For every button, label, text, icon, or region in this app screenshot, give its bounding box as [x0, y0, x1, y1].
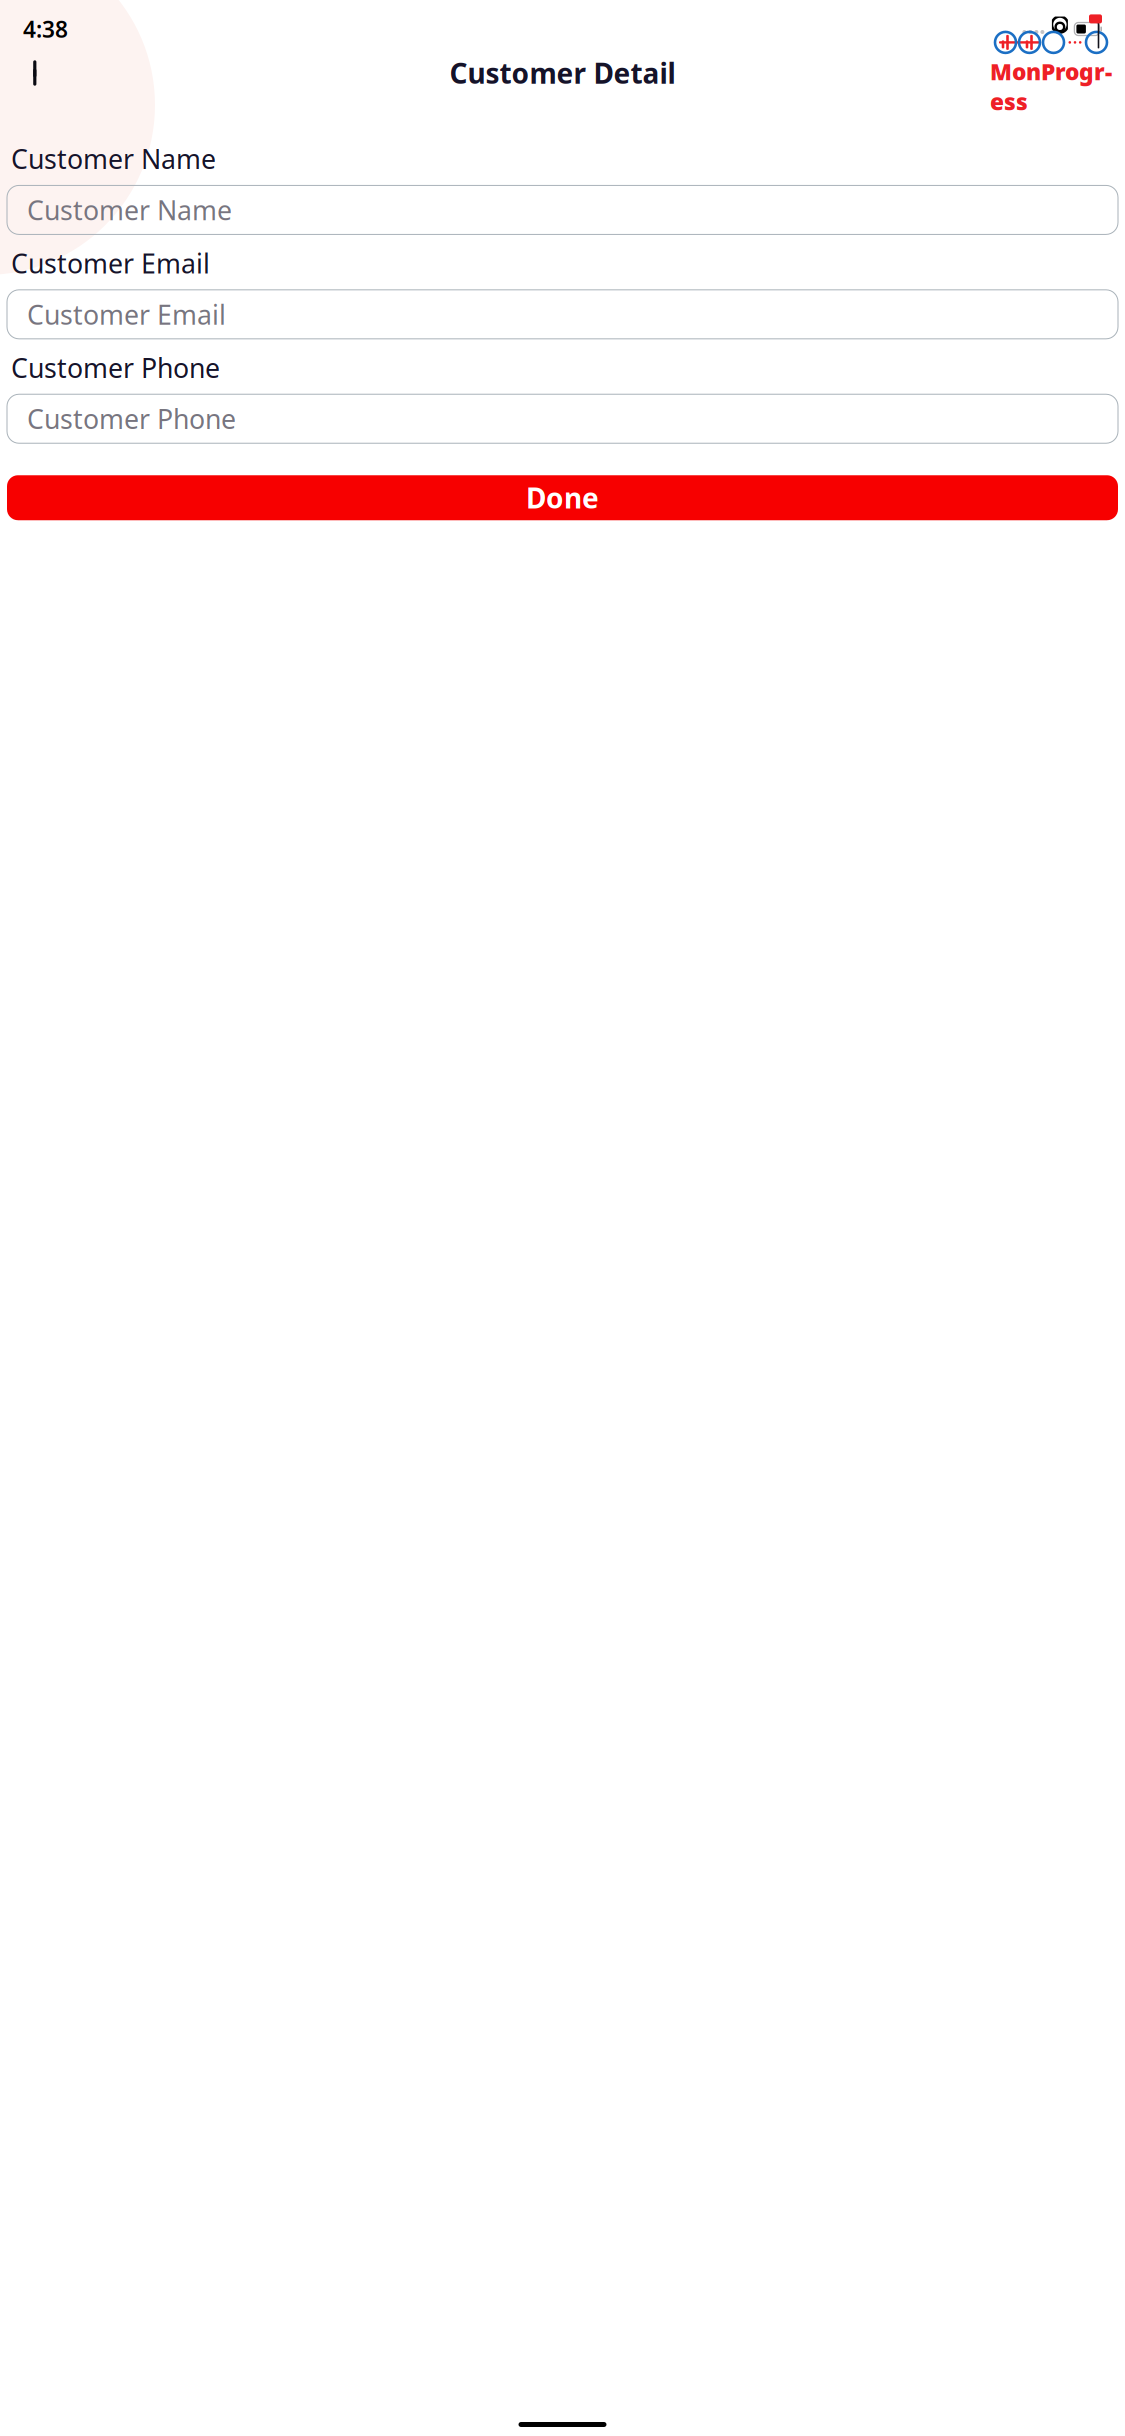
staticText: MonProgress	[990, 56, 1112, 117]
staticText: Customer Phone	[27, 401, 236, 436]
button[interactable]: Back	[10, 51, 54, 95]
staticText: Customer Name	[11, 141, 216, 176]
button[interactable]: Customer Name	[7, 185, 1118, 234]
staticText: Customer Name	[27, 192, 232, 228]
staticText: Customer Detail	[449, 54, 675, 92]
button[interactable]: Customer Phone	[7, 394, 1118, 443]
staticText: 4:38	[23, 14, 68, 44]
staticText: Customer Phone	[11, 350, 220, 385]
button[interactable]: Done	[7, 475, 1118, 520]
staticText: Customer Email	[27, 297, 226, 332]
button[interactable]: Customer Email	[7, 290, 1118, 339]
staticText: Done	[526, 479, 599, 516]
staticText: Customer Email	[11, 245, 210, 281]
